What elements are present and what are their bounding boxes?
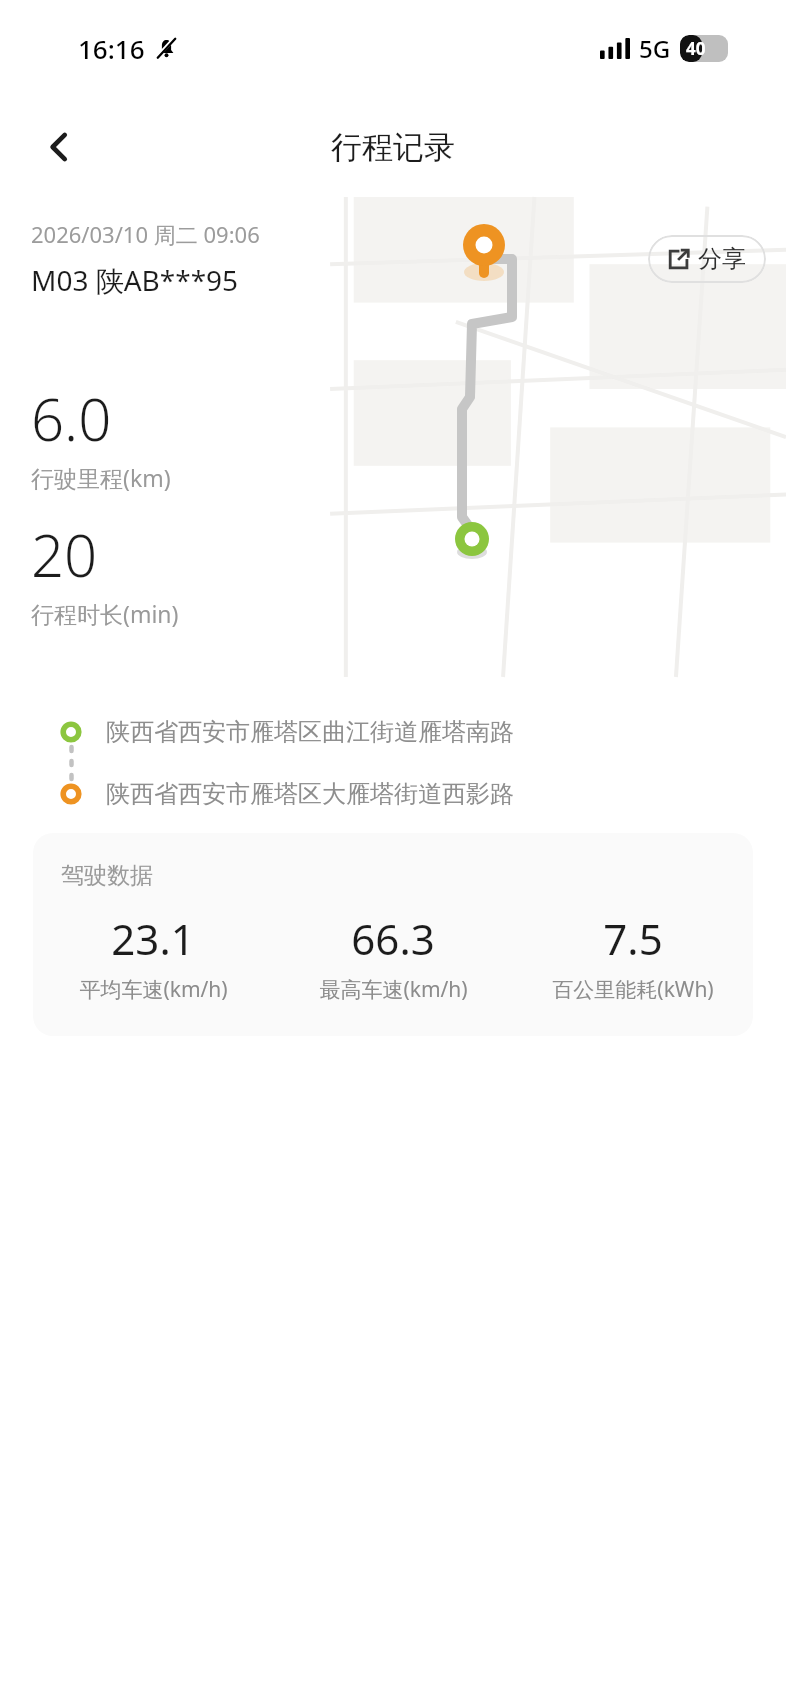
- staticText: 陕西省西安市雁塔区大雁塔街道西影路: [106, 779, 514, 809]
- staticText: 5G: [639, 32, 671, 65]
- staticText: 最高车速(km/h): [319, 975, 468, 1004]
- staticText: 平均车速(km/h): [79, 975, 228, 1004]
- staticText: 6.0: [31, 379, 112, 458]
- staticText: 行程时长(min): [31, 598, 179, 629]
- button[interactable]: 陕西省西安市雁塔区曲江街道雁塔南路: [0, 717, 786, 747]
- staticText: 16:16: [78, 31, 145, 66]
- staticText: 行驶里程(km): [31, 462, 171, 493]
- staticText: 百公里能耗(kWh): [552, 975, 714, 1004]
- staticText: 40: [686, 37, 706, 60]
- button[interactable]: 陕西省西安市雁塔区大雁塔街道西影路: [0, 779, 786, 809]
- button[interactable]: Back: [30, 118, 88, 176]
- staticText: 20: [31, 515, 98, 594]
- staticText: 7.5: [603, 910, 663, 967]
- staticText: 分享: [698, 244, 746, 274]
- staticText: 66.3: [351, 910, 435, 967]
- staticText: 2026/03/10 周二 09:06: [31, 219, 260, 249]
- staticText: M03 陕AB***95: [31, 261, 239, 299]
- staticText: 行程记录: [331, 128, 455, 167]
- button[interactable]: 驾驶数据: [33, 833, 753, 1036]
- button[interactable]: 分享: [648, 235, 766, 283]
- staticText: 陕西省西安市雁塔区曲江街道雁塔南路: [106, 717, 514, 747]
- staticText: 驾驶数据: [61, 861, 153, 890]
- staticText: 23.1: [111, 910, 195, 967]
